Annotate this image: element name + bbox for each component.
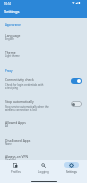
staticText: Logging bbox=[38, 170, 49, 174]
button[interactable]: Logging bbox=[29, 162, 57, 174]
button[interactable]: Profiles bbox=[2, 162, 29, 174]
button[interactable]: Allowed Apps bbox=[0, 120, 87, 128]
staticText: Profiles bbox=[11, 170, 21, 174]
button[interactable]: Switch off bbox=[71, 101, 82, 107]
staticText: Disallowed Apps bbox=[5, 138, 31, 142]
staticText: English bbox=[5, 37, 14, 41]
staticText: Settings bbox=[66, 170, 77, 174]
staticText: Stop automatically bbox=[5, 99, 34, 103]
staticText: Check for login credentials with a test … bbox=[5, 83, 44, 89]
staticText: All bbox=[5, 124, 8, 128]
staticText: Proxy bbox=[5, 69, 13, 73]
staticText: Settings bbox=[4, 9, 20, 15]
staticText: 10:14 bbox=[4, 2, 11, 6]
staticText: Disabled bbox=[5, 158, 16, 162]
staticText: Stop service automatically when the wire… bbox=[5, 105, 49, 111]
button[interactable]: Connectivity check bbox=[0, 77, 87, 89]
staticText: Connectivity check bbox=[5, 77, 34, 81]
button[interactable]: Stop automatically bbox=[0, 99, 87, 111]
staticText: None bbox=[5, 142, 12, 146]
button[interactable]: Always-on VPN bbox=[0, 154, 87, 162]
button[interactable]: Language bbox=[0, 33, 87, 41]
button[interactable]: Theme bbox=[0, 50, 87, 58]
staticText: Light theme bbox=[5, 54, 20, 58]
button[interactable]: Switch on bbox=[71, 78, 82, 84]
button[interactable]: Disallowed Apps bbox=[0, 138, 87, 146]
staticText: Theme bbox=[5, 50, 16, 54]
button[interactable]: Settings bbox=[57, 162, 85, 174]
staticText: Language bbox=[5, 33, 21, 37]
staticText: Appearance bbox=[5, 23, 21, 27]
staticText: Always-on VPN bbox=[5, 154, 29, 158]
staticText: Allowed Apps bbox=[5, 120, 26, 124]
